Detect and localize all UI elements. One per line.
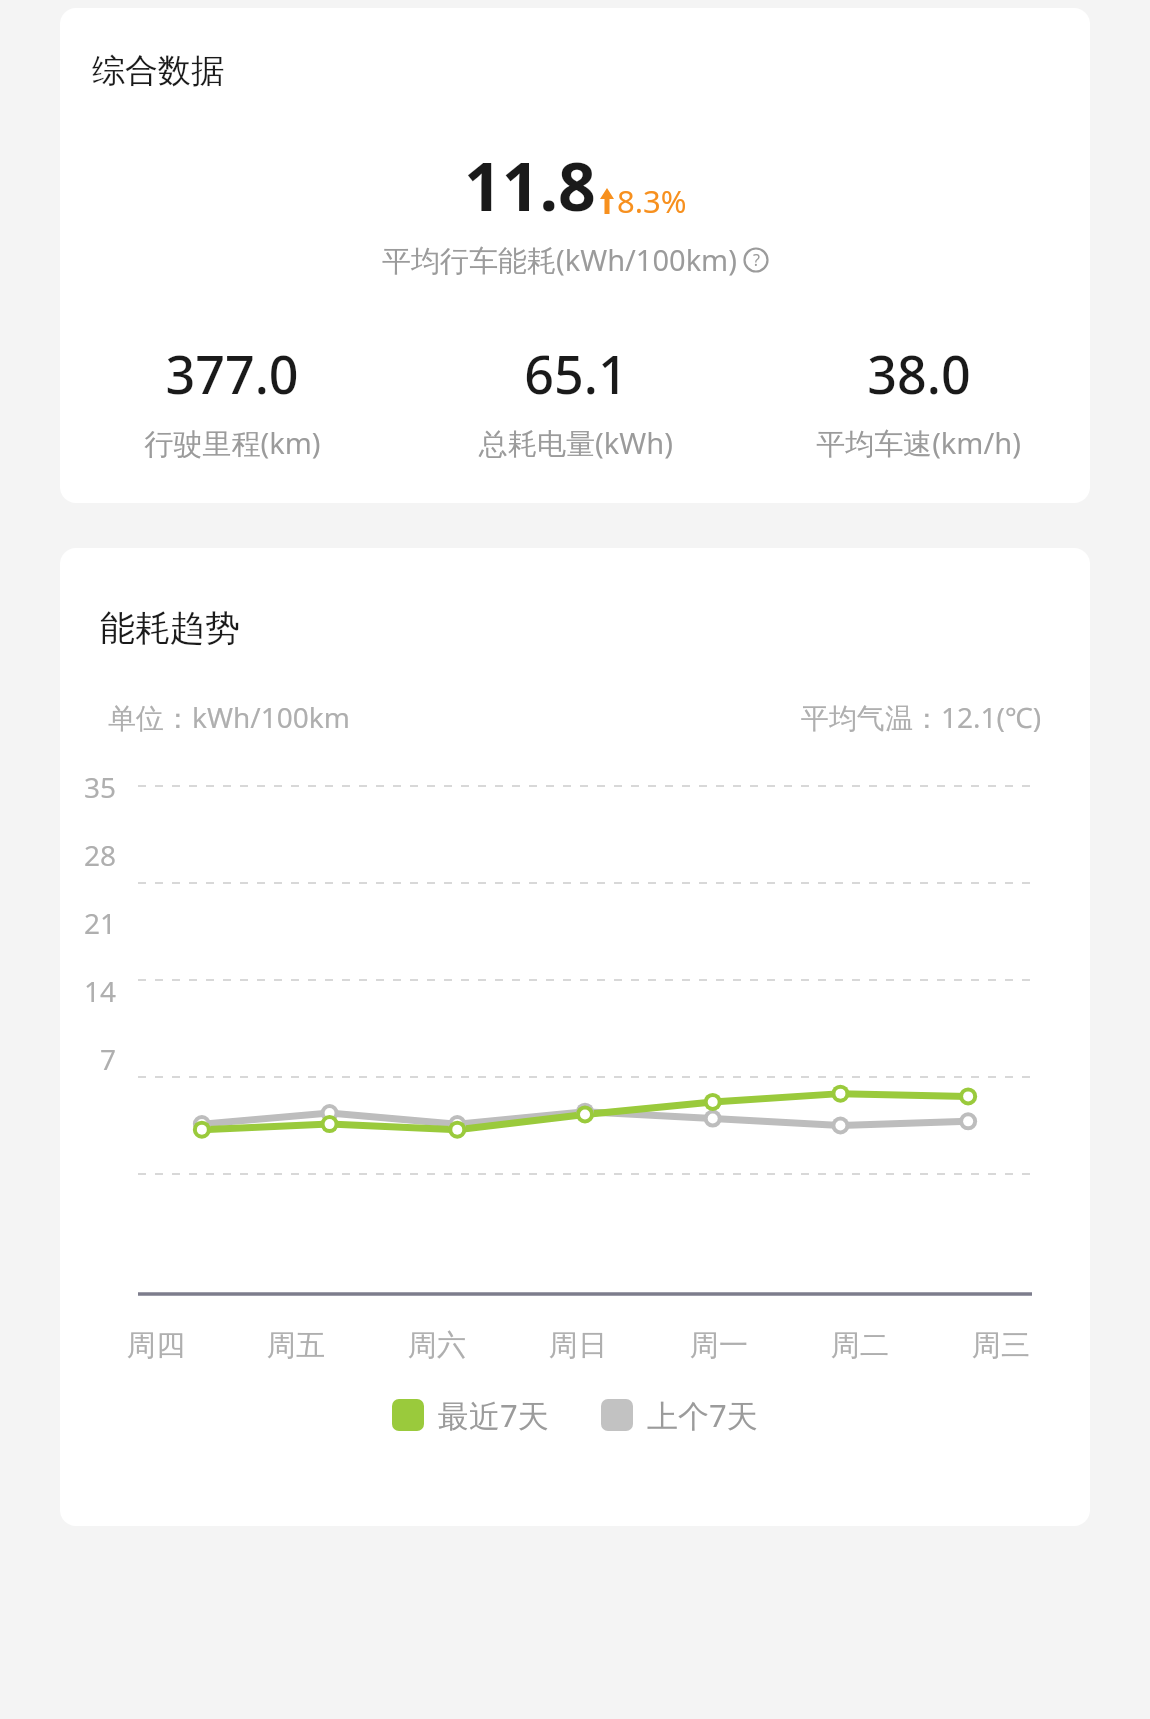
staticText: 能耗趋势 (100, 606, 240, 650)
staticText: 平均气温：12.1(℃) (801, 698, 1042, 736)
staticText: 周三 (972, 1327, 1030, 1364)
button[interactable]: 能耗趋势 (60, 548, 1090, 1526)
staticText: 周一 (690, 1327, 748, 1364)
staticText: 65.1 (524, 338, 628, 409)
staticText: 最近7天 (438, 1394, 549, 1436)
button[interactable]: 38.0 (747, 338, 1090, 463)
staticText: 上个7天 (647, 1394, 758, 1436)
staticText: 377.0 (165, 338, 299, 409)
staticText: 平均车速(km/h) (816, 423, 1021, 463)
staticText: 综合数据 (92, 50, 224, 92)
button[interactable]: 上个7天 (601, 1394, 758, 1436)
staticText: ? (753, 249, 760, 271)
button[interactable]: 综合数据 (60, 8, 1090, 503)
staticText: 周日 (549, 1327, 607, 1364)
staticText: 周五 (267, 1327, 325, 1364)
staticText: 总耗电量(kWh) (479, 423, 673, 463)
staticText: 8.3% (617, 180, 687, 222)
staticText: 平均行车能耗(kWh/100km) (382, 240, 737, 280)
staticText: 11.8 (464, 140, 596, 230)
staticText: 35 (83, 768, 116, 806)
staticText: 行驶里程(km) (144, 423, 321, 463)
staticText: 周六 (408, 1327, 466, 1364)
staticText: 21 (83, 904, 116, 942)
staticText: 7 (99, 1040, 116, 1078)
button[interactable]: 377.0 (60, 338, 404, 463)
staticText: 周二 (831, 1327, 889, 1364)
button[interactable]: 65.1 (404, 338, 747, 463)
staticText: 28 (83, 836, 116, 874)
staticText: 38.0 (867, 338, 971, 409)
staticText: 14 (83, 972, 116, 1010)
staticText: 单位：kWh/100km (108, 698, 350, 736)
staticText: 周四 (127, 1327, 185, 1364)
button[interactable]: 最近7天 (392, 1394, 549, 1436)
button[interactable]: 说明 (743, 247, 769, 273)
